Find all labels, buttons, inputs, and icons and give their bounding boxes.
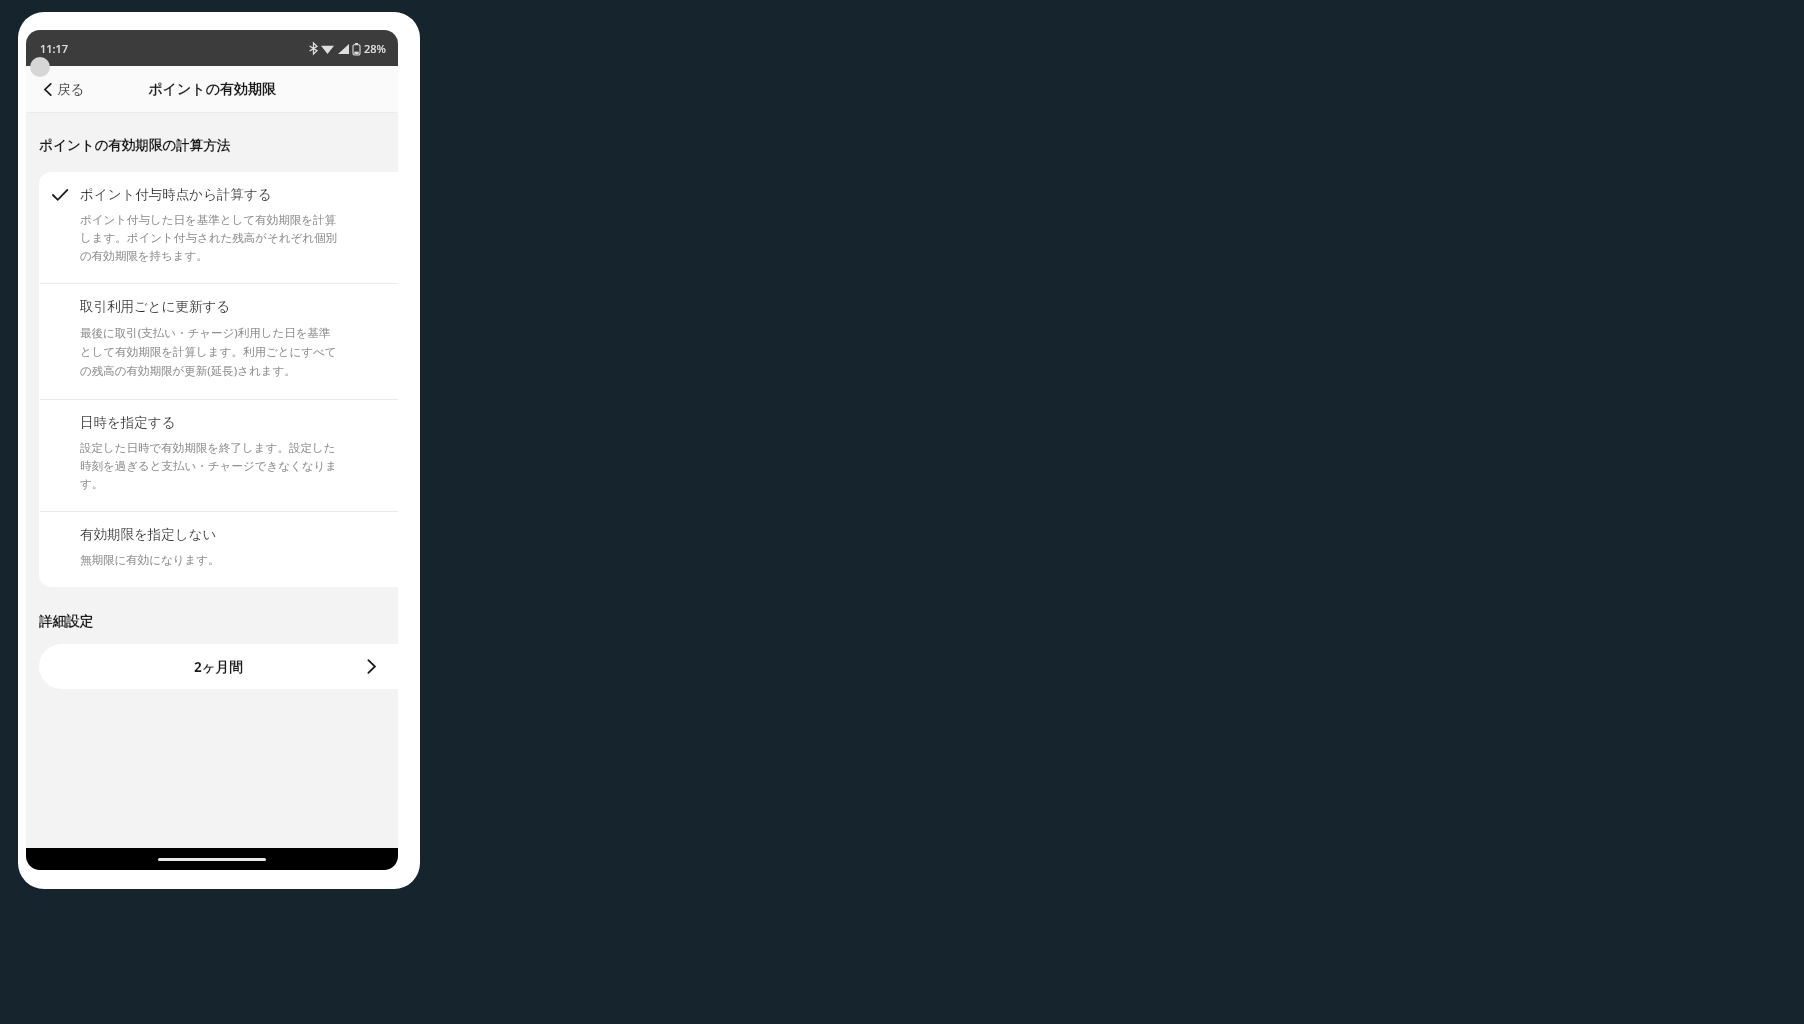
staticText: 最後に取引(支払い・チャージ)利用した日を基準 — [80, 325, 331, 341]
staticText: 無期限に有効になります。 — [80, 553, 220, 567]
staticText: 取引利用ごとに更新する — [80, 298, 231, 315]
staticText: の残高の有効期限が更新(延長)されます。 — [80, 363, 296, 379]
other: Battery — [353, 43, 360, 55]
staticText: ポイントの有効期限の計算方法 — [39, 137, 230, 154]
staticText: 戻る — [57, 81, 85, 98]
staticText: 有効期限を指定しない — [80, 526, 217, 543]
staticText: 28% — [364, 41, 386, 56]
other: Bluetooth — [310, 43, 317, 54]
button[interactable]: 戻る — [38, 74, 91, 105]
staticText: 11:17 — [40, 41, 69, 56]
staticText: の有効期限を持ちます。 — [80, 249, 208, 263]
other: Mobile signal — [338, 44, 349, 54]
staticText: 日時を指定する — [80, 414, 176, 431]
staticText: 時刻を過ぎると支払い・チャージできなくなりま — [80, 459, 338, 473]
staticText: します。ポイント付与された残高がそれぞれ個別 — [80, 231, 338, 245]
staticText: 詳細設定 — [39, 613, 93, 630]
staticText: として有効期限を計算します。利用ごとにすべて — [80, 345, 337, 359]
button[interactable]: 有効期限を指定しない — [39, 512, 398, 587]
button[interactable]: ポイント付与時点から計算する — [39, 172, 398, 283]
other: Wi-Fi — [321, 44, 334, 54]
button[interactable]: 日時を指定する — [39, 400, 398, 511]
staticText: ポイントの有効期限 — [148, 81, 276, 99]
button[interactable]: 取引利用ごとに更新する — [39, 284, 398, 399]
staticText: 2ヶ月間 — [194, 658, 243, 676]
staticText: す。 — [80, 477, 104, 491]
staticText: 設定した日時で有効期限を終了します。設定した — [80, 441, 336, 455]
staticText: ポイント付与時点から計算する — [80, 186, 272, 203]
button[interactable]: 2ヶ月間 — [39, 644, 398, 689]
staticText: ポイント付与した日を基準として有効期限を計算 — [80, 213, 336, 227]
